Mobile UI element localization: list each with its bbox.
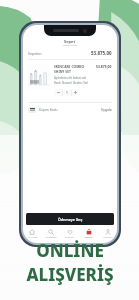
staticText: 53.875,00 (96, 64, 112, 69)
button[interactable]: Ödemeye Geç (26, 213, 114, 225)
staticText: SKINCARE COMBO SHINY SET (54, 64, 93, 74)
button[interactable]: Sepetim (79, 227, 98, 241)
staticText: Ana Sayfa (27, 236, 38, 239)
staticText: Ödemeye Geç (58, 217, 83, 222)
button[interactable]: Favoriler (60, 227, 79, 241)
button[interactable]: Kategoriler (41, 227, 60, 241)
button[interactable]: Ana Sayfa (23, 227, 41, 241)
staticText: Uygula (101, 108, 112, 112)
button[interactable]: Increase quantity (72, 89, 79, 96)
staticText: Aydınlatıcı cilt bakım seti (54, 76, 87, 80)
staticText: Favoriler (65, 236, 74, 239)
staticText: Sepet (64, 39, 76, 44)
staticText: ONLİNE (36, 239, 104, 262)
staticText: ALIŞVERİŞ (26, 263, 114, 286)
staticText: Renk: Naturel Beden: Std (54, 81, 88, 85)
staticText: Hesabım (103, 236, 113, 239)
staticText: Kategoriler (45, 236, 57, 239)
button[interactable]: SKINCARE COMBO SHINY SET (28, 64, 112, 96)
staticText: Sepetim (84, 236, 93, 239)
button[interactable]: Kupon Kodu (28, 107, 112, 113)
button[interactable]: Hesabım (98, 227, 117, 241)
staticText: Sepetim (28, 51, 42, 56)
staticText: 1 (66, 91, 68, 95)
staticText: Kupon Kodu (39, 108, 58, 112)
button[interactable]: Decrease quantity (55, 89, 62, 96)
staticText: 53.875,00 (91, 50, 112, 56)
